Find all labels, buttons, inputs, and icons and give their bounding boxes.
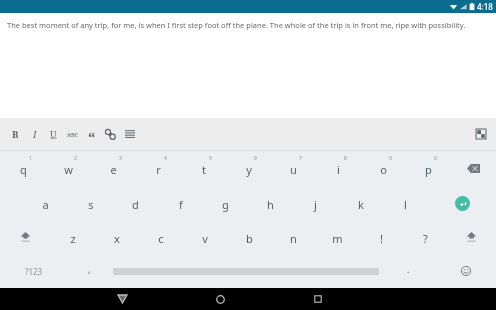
staticText: ?123 — [25, 266, 43, 277]
staticText: ABC — [67, 131, 78, 138]
button[interactable]: d — [113, 186, 158, 220]
staticText: w — [64, 162, 73, 177]
staticText: a — [42, 197, 49, 212]
button[interactable]: Shift — [447, 220, 496, 254]
staticText: 8 — [344, 155, 347, 162]
button[interactable]: 4 — [136, 151, 181, 186]
button[interactable]: z — [50, 220, 95, 254]
button[interactable]: Backspace — [451, 151, 496, 186]
staticText: x — [114, 231, 120, 246]
button[interactable]: g — [203, 186, 248, 220]
button[interactable]: Shift — [0, 220, 50, 254]
staticText: 0 — [434, 155, 437, 162]
button[interactable]: c — [139, 220, 183, 254]
button[interactable]: 7 — [271, 151, 316, 186]
staticText: The best moment of any trip, for me, is … — [7, 20, 466, 30]
staticText: y — [246, 162, 252, 177]
button[interactable]: Bold — [6, 120, 25, 148]
button[interactable]: Italic — [25, 120, 44, 148]
staticText: ! — [380, 231, 383, 246]
staticText: s — [88, 197, 94, 212]
button[interactable]: , — [68, 254, 111, 288]
staticText: , — [88, 263, 91, 275]
button[interactable]: 3 — [91, 151, 136, 186]
staticText: q — [20, 162, 27, 177]
button[interactable]: Underline — [44, 120, 63, 148]
staticText: . — [407, 263, 410, 275]
button[interactable]: 5 — [181, 151, 226, 186]
staticText: 3 — [119, 155, 122, 162]
staticText: g — [222, 197, 229, 212]
button[interactable]: l — [383, 186, 428, 220]
staticText: h — [267, 197, 274, 212]
button[interactable]: Back — [105, 288, 139, 310]
button[interactable]: 8 — [316, 151, 361, 186]
staticText: c — [158, 231, 164, 246]
staticText: 1 — [29, 155, 32, 162]
button[interactable]: s — [68, 186, 113, 220]
button[interactable]: Insert link — [101, 120, 120, 148]
staticText: “ — [88, 127, 96, 147]
button[interactable]: ! — [359, 220, 403, 254]
staticText: 7 — [299, 155, 302, 162]
staticText: 5 — [209, 155, 212, 162]
button[interactable]: The best moment of any trip, for me, is … — [0, 13, 496, 118]
button[interactable]: b — [227, 220, 271, 254]
staticText: j — [314, 197, 317, 212]
staticText: e — [110, 162, 117, 177]
staticText: I — [33, 128, 37, 141]
staticText: t — [202, 162, 206, 177]
button[interactable]: 6 — [226, 151, 271, 186]
staticText: u — [290, 162, 297, 177]
staticText: ? — [423, 231, 428, 246]
button[interactable]: Enter — [428, 186, 496, 220]
staticText: z — [70, 231, 76, 246]
button[interactable]: Strikethrough — [63, 120, 82, 148]
button[interactable]: a — [23, 186, 68, 220]
staticText: d — [132, 197, 139, 212]
button[interactable]: Insert media — [471, 124, 491, 144]
staticText: p — [425, 162, 432, 177]
button[interactable]: n — [271, 220, 315, 254]
button[interactable]: Quote — [82, 120, 101, 148]
staticText: 6 — [254, 155, 257, 162]
button[interactable]: f — [158, 186, 203, 220]
staticText: k — [358, 197, 364, 212]
button[interactable]: ?123 — [0, 254, 68, 288]
staticText: f — [179, 197, 183, 212]
staticText: 4 — [164, 155, 167, 162]
button[interactable]: 1 — [0, 151, 46, 186]
button[interactable]: h — [248, 186, 293, 220]
button[interactable]: x — [95, 220, 139, 254]
button[interactable]: ? — [403, 220, 447, 254]
staticText: 2 — [74, 155, 77, 162]
staticText: U — [50, 128, 57, 140]
staticText: 4:18 — [477, 1, 493, 12]
staticText: i — [337, 162, 340, 177]
staticText: m — [332, 231, 343, 246]
staticText: b — [246, 231, 253, 246]
staticText: 9 — [389, 155, 392, 162]
button[interactable]: Home — [203, 288, 237, 310]
button[interactable]: v — [183, 220, 227, 254]
button[interactable]: List — [120, 120, 139, 148]
button[interactable]: Recent apps — [301, 288, 335, 310]
button[interactable]: 0 — [406, 151, 451, 186]
staticText: l — [404, 197, 407, 212]
staticText: o — [380, 162, 387, 177]
staticText: B — [12, 128, 19, 141]
button[interactable]: 2 — [46, 151, 91, 186]
staticText: v — [202, 231, 208, 246]
button[interactable]: Space — [111, 254, 380, 288]
button[interactable]: 9 — [361, 151, 406, 186]
button[interactable]: k — [338, 186, 383, 220]
button[interactable]: j — [293, 186, 338, 220]
button[interactable]: Emoji — [436, 254, 496, 288]
staticText: r — [156, 162, 161, 177]
staticText: n — [290, 231, 297, 246]
button[interactable]: m — [315, 220, 359, 254]
